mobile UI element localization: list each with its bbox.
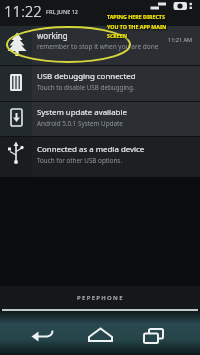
staticText: SCREEN	[107, 32, 128, 39]
button[interactable]	[133, 311, 200, 355]
staticText: remember to stop it when you are done	[37, 42, 159, 51]
button[interactable]: USB debugging connected	[0, 66, 200, 101]
button[interactable]: Connected as a media device	[0, 137, 200, 177]
staticText: TAPING HERE DIRECTS	[107, 13, 165, 20]
staticText: working	[37, 30, 68, 41]
button[interactable]	[66, 311, 133, 355]
button[interactable]: System update available	[0, 102, 200, 136]
staticText: PEPEPHONE	[77, 294, 124, 302]
staticText: USB debugging connected	[37, 71, 136, 82]
staticText: 11:22	[4, 1, 42, 21]
staticText: System update available	[37, 107, 127, 118]
staticText: FRI, JUNE 12	[46, 8, 78, 15]
staticText: 11:21 AM	[168, 36, 192, 43]
staticText: Android 5.0.1 System Update	[37, 119, 123, 128]
button[interactable]: working	[0, 26, 200, 65]
staticText: Connected as a media device	[37, 144, 145, 155]
staticText: Touch for other USB options.	[37, 156, 123, 165]
staticText: YOU TO THE APP MAIN	[107, 23, 167, 30]
staticText: Touch to disable USB debugging.	[37, 83, 135, 92]
button[interactable]	[0, 311, 66, 355]
